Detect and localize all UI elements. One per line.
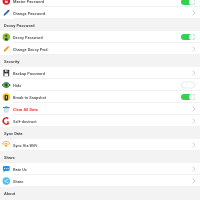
other: Open <box>192 10 196 16</box>
button[interactable]: Change Password <box>0 7 200 19</box>
staticText: Master Password <box>13 0 45 4</box>
button[interactable]: Clear All Data <box>0 103 200 115</box>
staticText: Break-in Snapshot <box>13 95 47 100</box>
staticText: Share <box>13 179 24 184</box>
other: Open <box>192 166 196 172</box>
button[interactable]: Toggle on <box>181 34 195 40</box>
button[interactable]: Rate Us <box>0 163 200 175</box>
button[interactable]: Toggle off <box>181 82 195 88</box>
button[interactable]: Master Password <box>0 0 200 7</box>
staticText: Change Decoy Pwd. <box>13 47 49 52</box>
staticText: About <box>4 191 16 196</box>
other: Open <box>192 118 196 124</box>
button[interactable]: Decoy Password <box>0 31 200 43</box>
staticText: Sync Via WiFi <box>13 143 38 148</box>
staticText: Hide <box>13 83 22 88</box>
other: Open <box>192 106 196 112</box>
button[interactable]: Sync Via WiFi <box>0 139 200 151</box>
button[interactable]: Change Decoy Pwd. <box>0 43 200 55</box>
button[interactable]: Backup Password <box>0 67 200 79</box>
staticText: Self-destruct <box>13 119 37 124</box>
button[interactable]: Break-in Snapshot <box>0 91 200 103</box>
button[interactable]: Self-destruct <box>0 115 200 127</box>
button[interactable]: Toggle on <box>181 0 195 5</box>
other: Open <box>192 70 196 76</box>
other: Open <box>192 142 196 148</box>
staticText: Sync Data <box>4 131 23 136</box>
other: Open <box>192 46 196 52</box>
staticText: Backup Password <box>13 71 45 76</box>
staticText: Clear All Data <box>13 107 38 112</box>
staticText: Decoy Password <box>4 23 35 28</box>
button[interactable]: Share <box>0 175 200 187</box>
staticText: Share <box>4 155 15 160</box>
button[interactable]: Hide <box>0 79 200 91</box>
other: Open <box>192 178 196 184</box>
staticText: Decoy Password <box>13 35 43 40</box>
button[interactable]: Toggle on <box>181 94 195 100</box>
staticText: Rate Us <box>13 167 27 172</box>
staticText: Change Password <box>13 11 46 16</box>
staticText: Security <box>4 59 20 64</box>
